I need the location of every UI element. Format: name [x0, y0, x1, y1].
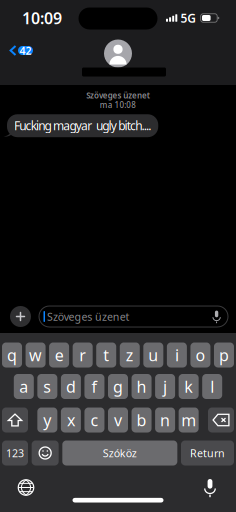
button[interactable]: k [179, 374, 199, 399]
staticText: Szöveges üzenet [86, 90, 150, 101]
staticText: o [195, 344, 205, 366]
staticText: e [55, 344, 64, 366]
button[interactable]: e [49, 342, 69, 367]
button[interactable]: g [108, 374, 128, 399]
button[interactable]: Add attachment [10, 306, 31, 327]
button[interactable]: x [61, 407, 81, 432]
button[interactable]: f [84, 374, 104, 399]
button[interactable]: t [96, 342, 116, 367]
button[interactable]: j [155, 374, 175, 399]
button[interactable]: Next keyboard [0, 477, 46, 497]
button[interactable]: w [26, 342, 46, 367]
button[interactable]: Szóköz [62, 440, 177, 465]
staticText: Return [190, 446, 225, 460]
button[interactable]: v [108, 407, 128, 432]
staticText: w [29, 344, 42, 366]
staticText: a [19, 376, 28, 397]
button[interactable]: d [61, 374, 81, 399]
button[interactable]: r [73, 342, 93, 367]
staticText: Szóköz [103, 446, 137, 460]
staticText: c [90, 409, 98, 431]
staticText: q [7, 344, 17, 366]
button[interactable]: n [155, 407, 175, 432]
button[interactable]: Contact details [76, 39, 160, 76]
button[interactable]: z [120, 342, 140, 367]
staticText: b [137, 409, 147, 431]
staticText: n [160, 409, 170, 431]
staticText: r [79, 344, 86, 366]
button[interactable]: o [190, 342, 210, 367]
staticText: k [184, 376, 193, 397]
button[interactable]: s [37, 374, 57, 399]
staticText: i [175, 344, 179, 366]
staticText: p [219, 344, 229, 366]
staticText: 42 [19, 43, 31, 58]
staticText: t [103, 344, 109, 366]
button[interactable]: h [132, 374, 152, 399]
button[interactable]: Dictate [193, 477, 236, 497]
staticText: g [113, 376, 123, 397]
staticText: 10:09 [22, 7, 62, 29]
staticText: y [43, 409, 51, 431]
staticText: x [67, 409, 75, 431]
button[interactable]: m [179, 407, 199, 432]
button[interactable]: q [2, 342, 22, 367]
button[interactable]: Dictate [212, 310, 221, 323]
button[interactable]: Emoji [32, 440, 59, 465]
button[interactable]: 123 [2, 440, 28, 465]
button[interactable]: b [132, 407, 152, 432]
button[interactable]: Shift [2, 407, 28, 432]
staticText: Fucking magyar ugly bitch.... [14, 118, 151, 134]
button[interactable]: c [84, 407, 104, 432]
button[interactable]: a [14, 374, 34, 399]
staticText: z [126, 344, 134, 366]
button[interactable]: l [202, 374, 222, 399]
staticText: v [114, 409, 122, 431]
button[interactable]: p [214, 342, 234, 367]
staticText: Szöveges üzenet [47, 309, 130, 324]
button[interactable]: u [143, 342, 163, 367]
staticText: ma 10:08 [100, 100, 136, 110]
staticText: d [66, 376, 76, 397]
staticText: m [181, 409, 196, 431]
button[interactable]: Delete [208, 407, 234, 432]
button[interactable]: Return [181, 440, 234, 465]
button[interactable]: Back, 42 unread [0, 34, 33, 56]
staticText: f [91, 376, 97, 397]
staticText: u [148, 344, 158, 366]
staticText: s [43, 376, 51, 397]
button[interactable]: y [37, 407, 57, 432]
button[interactable]: i [167, 342, 187, 367]
staticText: 123 [6, 446, 24, 460]
staticText: l [210, 376, 214, 397]
staticText: j [163, 376, 167, 397]
staticText: h [137, 376, 147, 397]
staticText: 5G [180, 10, 196, 26]
